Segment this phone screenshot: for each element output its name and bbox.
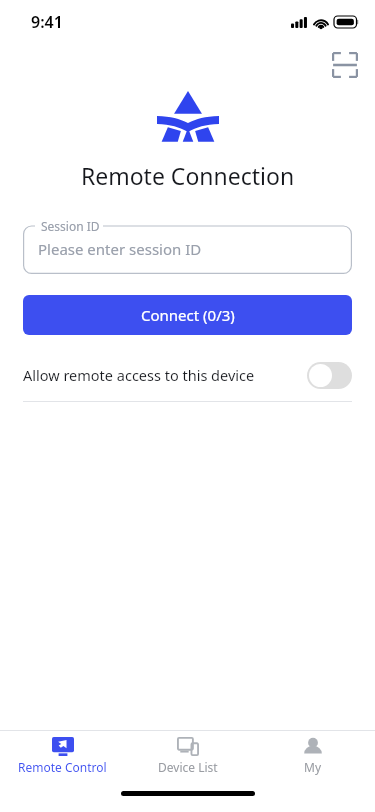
staticText: My: [304, 759, 322, 775]
staticText: Please enter session ID: [38, 239, 202, 259]
button[interactable]: Scan QR code: [326, 46, 364, 84]
button[interactable]: Remote Control: [0, 731, 125, 783]
button[interactable]: Allow remote access to this device: [0, 355, 375, 395]
staticText: Remote Control: [18, 759, 107, 775]
button[interactable]: Device List: [125, 731, 250, 783]
staticText: Remote Connection: [0, 160, 375, 191]
button[interactable]: My: [250, 731, 375, 783]
button[interactable]: Allow remote access toggle: [307, 362, 352, 389]
staticText: Device List: [158, 759, 218, 775]
staticText: Allow remote access to this device: [23, 365, 255, 385]
staticText: 9:41: [31, 11, 63, 33]
button[interactable]: Connect (0/3): [23, 295, 352, 335]
staticText: Connect (0/3): [141, 305, 235, 325]
staticText: Session ID: [41, 218, 100, 234]
